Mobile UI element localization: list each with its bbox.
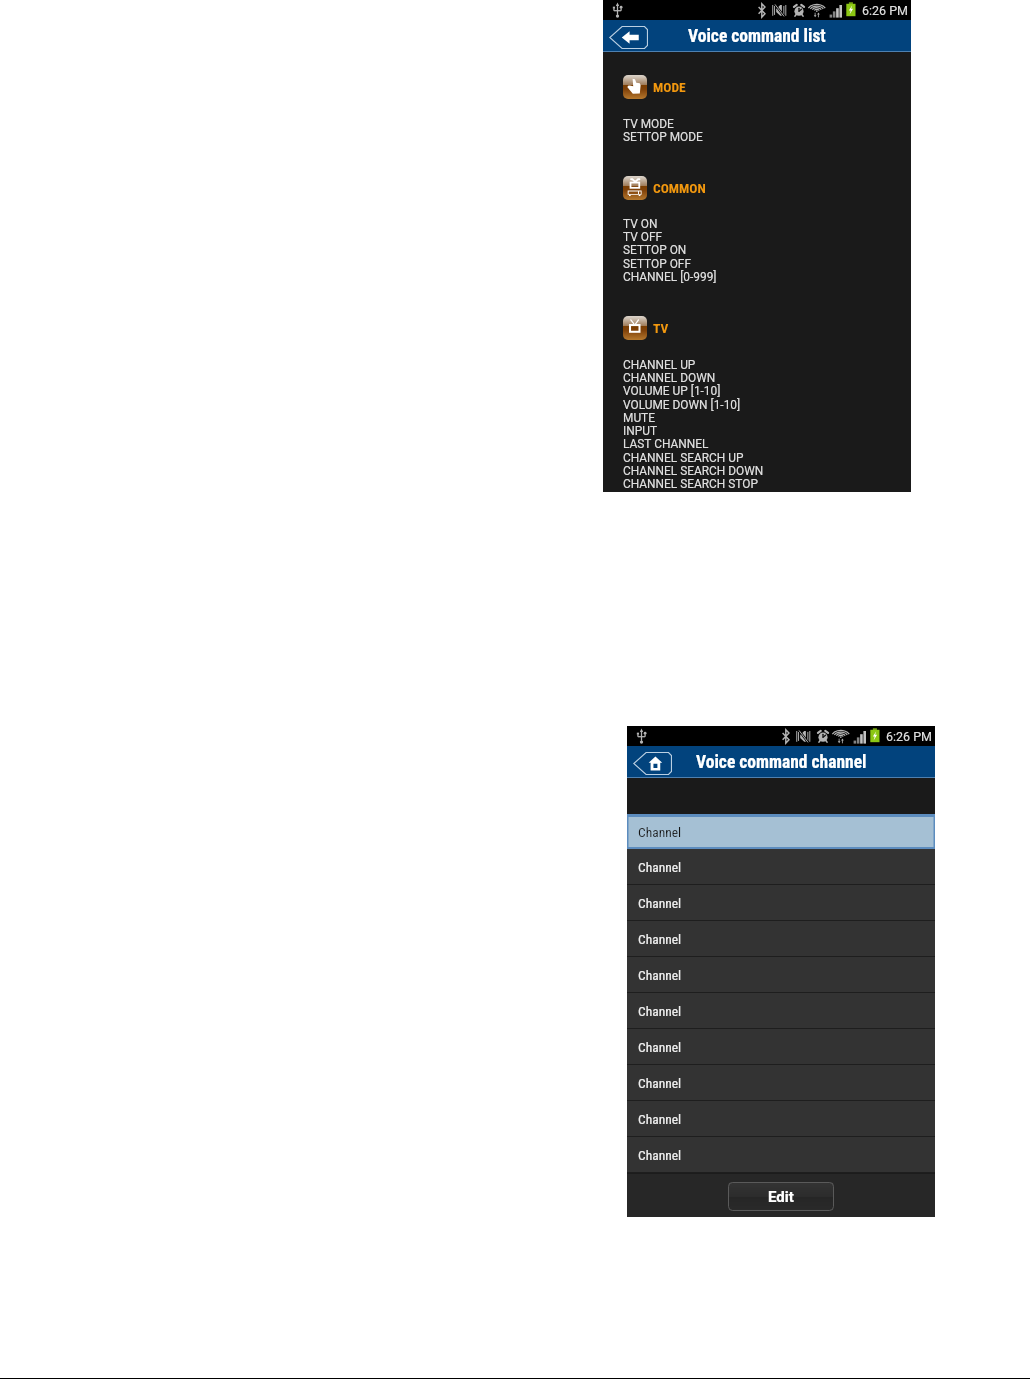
staticText: SETTOP ON <box>623 243 687 257</box>
staticText: Channel <box>638 1147 682 1163</box>
staticText: 6:26 PM <box>886 729 933 744</box>
staticText: Voice command channel <box>696 752 867 773</box>
staticText: INPUT <box>623 424 658 438</box>
staticText: CHANNEL UP <box>623 358 696 372</box>
staticText: VOLUME DOWN [1-10] <box>623 398 741 412</box>
staticText: Channel <box>638 1003 682 1019</box>
staticText: Channel <box>638 1075 682 1091</box>
button[interactable]: Channel <box>627 1065 935 1101</box>
staticText: MODE <box>653 79 686 95</box>
button[interactable]: Channel <box>627 1101 935 1137</box>
staticText: CHANNEL [0-999] <box>623 270 717 284</box>
staticText: Channel <box>638 824 682 840</box>
button[interactable]: Channel <box>627 1029 935 1065</box>
staticText: COMMON <box>653 180 706 196</box>
staticText: VOLUME UP [1-10] <box>623 384 721 398</box>
button[interactable]: Channel <box>627 957 935 993</box>
staticText: Channel <box>638 1039 682 1055</box>
staticText: TV <box>653 320 669 336</box>
button[interactable]: Channel <box>627 885 935 921</box>
button[interactable]: TV <box>623 316 669 340</box>
button[interactable]: Channel <box>627 1137 935 1173</box>
staticText: CHANNEL SEARCH UP <box>623 451 744 465</box>
staticText: MUTE <box>623 411 655 425</box>
button[interactable]: Channel <box>627 814 935 849</box>
staticText: TV ON <box>623 217 658 231</box>
button[interactable]: Channel <box>627 849 935 885</box>
staticText: SETTOP MODE <box>623 130 703 144</box>
staticText: CHANNEL SEARCH DOWN <box>623 464 764 478</box>
button[interactable]: Home <box>633 752 672 775</box>
button[interactable]: Edit <box>728 1182 834 1211</box>
staticText: TV MODE <box>623 117 674 131</box>
staticText: 6:26 PM <box>862 3 909 18</box>
staticText: Channel <box>638 1111 682 1127</box>
staticText: Channel <box>638 859 682 875</box>
staticText: TV OFF <box>623 230 663 244</box>
staticText: Channel <box>638 931 682 947</box>
button[interactable]: Channel <box>627 921 935 957</box>
button[interactable]: COMMON <box>623 176 706 200</box>
staticText: Channel <box>638 895 682 911</box>
staticText: Edit <box>768 1188 794 1206</box>
staticText: CHANNEL SEARCH STOP <box>623 477 758 491</box>
staticText: SETTOP OFF <box>623 257 692 271</box>
button[interactable]: MODE <box>623 75 686 99</box>
staticText: LAST CHANNEL <box>623 437 709 451</box>
button[interactable]: Back <box>609 26 648 49</box>
button[interactable]: Channel <box>627 993 935 1029</box>
staticText: Voice command list <box>688 26 826 47</box>
staticText: CHANNEL DOWN <box>623 371 716 385</box>
staticText: Channel <box>638 967 682 983</box>
